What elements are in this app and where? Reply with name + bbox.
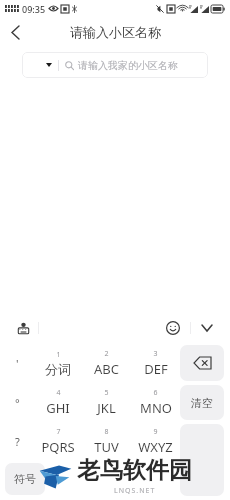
staticText: PQRS (41, 438, 75, 456)
button[interactable]: 6 (131, 383, 180, 422)
button[interactable]: Enter (180, 424, 224, 496)
button[interactable]: 1 (34, 343, 82, 383)
button[interactable]: Hide keyboard (198, 319, 216, 337)
staticText: JKL (97, 399, 116, 417)
button[interactable]: 3 (131, 343, 180, 383)
staticText: 符号 (14, 472, 36, 486)
staticText: 2 (104, 349, 109, 359)
staticText: ' (16, 356, 19, 371)
button[interactable]: 9 (131, 422, 180, 461)
staticText: MNO (140, 399, 172, 417)
button[interactable]: 符号 (5, 463, 45, 495)
button[interactable]: 2 (82, 343, 131, 383)
staticText: DEF (144, 360, 168, 378)
staticText: TUV (94, 438, 119, 456)
button[interactable]: ° (0, 383, 34, 422)
staticText: 分词 (45, 361, 71, 377)
staticText: 9 (153, 427, 158, 437)
staticText: 1 (56, 350, 61, 360)
staticText: ? (15, 434, 20, 449)
button[interactable]: Zero (82, 461, 131, 500)
staticText: 4 (56, 388, 61, 398)
button[interactable]: ' (0, 343, 34, 383)
staticText: LNQS.NET (114, 486, 156, 496)
staticText: 5 (104, 388, 109, 398)
button[interactable]: 5 (82, 383, 131, 422)
staticText: 6 (153, 388, 158, 398)
staticText: 3 (153, 349, 158, 359)
staticText: 09:35 (22, 3, 46, 15)
staticText: 老鸟软件园 (77, 456, 192, 485)
button[interactable]: ! (0, 461, 34, 500)
staticText: ° (15, 395, 20, 410)
staticText: 请输入我家的小区名称 (78, 59, 178, 72)
button[interactable]: Switch (34, 461, 82, 500)
staticText: 7 (56, 427, 61, 437)
button[interactable]: Backspace (180, 345, 224, 381)
button[interactable]: 7 (34, 422, 82, 461)
staticText: 请输入小区名称 (70, 24, 161, 40)
button[interactable]: Space (131, 461, 180, 500)
button[interactable]: 8 (82, 422, 131, 461)
button[interactable]: Input method (14, 319, 32, 337)
staticText: WXYZ (138, 438, 173, 456)
staticText: ABC (94, 360, 119, 378)
staticText: 8 (104, 427, 109, 437)
staticText: ! (16, 473, 19, 488)
button[interactable]: Back (0, 17, 30, 47)
staticText: 清空 (191, 396, 213, 410)
button[interactable]: ? (0, 422, 34, 461)
button[interactable]: Emoji (163, 318, 183, 338)
button[interactable]: 请输入我家的小区名称 (22, 52, 208, 78)
button[interactable]: 4 (34, 383, 82, 422)
staticText: GHI (46, 399, 70, 417)
button[interactable]: 清空 (180, 385, 224, 420)
